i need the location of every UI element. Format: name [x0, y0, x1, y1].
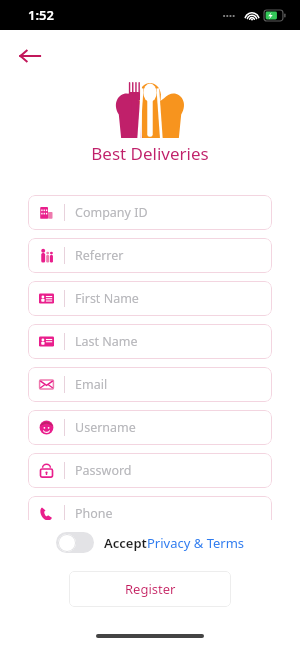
staticText: Register [125, 580, 176, 598]
button[interactable]: Privacy & Terms [147, 534, 245, 552]
staticText: Referrer [75, 247, 124, 264]
button[interactable]: First Name [28, 281, 272, 316]
staticText: Privacy & Terms [147, 534, 245, 552]
button[interactable]: Email [28, 367, 272, 402]
staticText: Email [75, 376, 108, 393]
staticText: 1:52 [28, 6, 54, 24]
button[interactable]: Phone [28, 496, 272, 531]
staticText: Username [75, 419, 136, 436]
button[interactable]: Accept toggle [56, 532, 94, 553]
staticText: Last Name [75, 333, 138, 350]
button[interactable]: Company ID [28, 195, 272, 230]
button[interactable] [28, 539, 272, 549]
button[interactable]: Referrer [28, 238, 272, 273]
staticText: Phone [75, 505, 113, 522]
staticText: Company ID [75, 204, 148, 221]
staticText: First Name [75, 290, 139, 307]
button[interactable]: Back [10, 36, 50, 76]
button[interactable]: Last Name [28, 324, 272, 359]
button[interactable]: Password [28, 453, 272, 488]
staticText: Password [75, 462, 132, 479]
button[interactable]: Username [28, 410, 272, 445]
staticText: Best Deliveries [91, 142, 209, 165]
button[interactable]: Register [69, 571, 231, 607]
staticText: Accept [104, 534, 147, 552]
